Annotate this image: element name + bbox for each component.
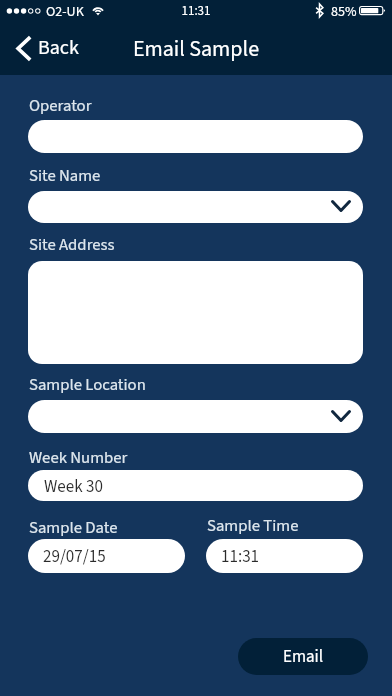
button[interactable] xyxy=(28,120,363,153)
staticText: Site Address xyxy=(29,233,115,257)
staticText: 11:31 xyxy=(221,545,260,569)
button[interactable] xyxy=(28,539,185,573)
staticText: Back xyxy=(38,34,79,62)
staticText: 29/07/15 xyxy=(43,545,106,569)
staticText: 85% xyxy=(331,2,357,22)
button[interactable]: Email xyxy=(238,638,368,675)
other: Expand xyxy=(330,409,352,423)
staticText: Week 30 xyxy=(44,475,103,499)
staticText: Site Name xyxy=(29,164,101,188)
staticText: Operator xyxy=(29,94,92,118)
button[interactable] xyxy=(28,191,363,223)
staticText: Week Number xyxy=(29,446,128,470)
button[interactable] xyxy=(28,400,363,433)
staticText: Sample Location xyxy=(29,373,146,397)
staticText: Email xyxy=(283,645,324,669)
staticText: Sample Time xyxy=(207,514,299,538)
other: Expand xyxy=(330,199,352,213)
staticText: Sample Date xyxy=(29,516,118,540)
staticText: Email Sample xyxy=(0,33,392,64)
staticText: 11:31 xyxy=(0,2,392,21)
button[interactable] xyxy=(28,261,363,364)
staticText: O2-UK xyxy=(46,2,84,22)
button[interactable] xyxy=(206,539,363,573)
button[interactable]: Back xyxy=(12,30,86,64)
button[interactable] xyxy=(28,470,363,501)
